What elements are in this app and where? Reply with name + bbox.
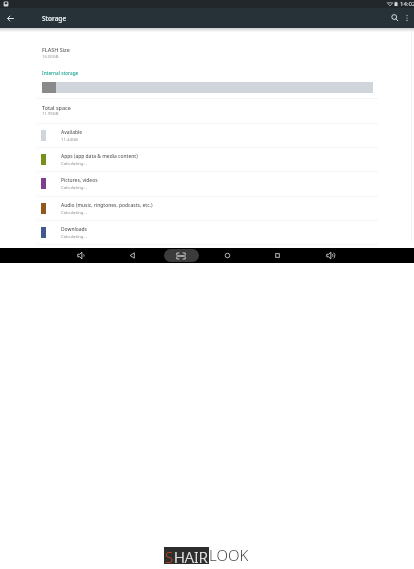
button[interactable]: Back	[0, 8, 20, 28]
staticText: Audio (music, ringtones, podcasts, etc.)	[61, 202, 153, 209]
button[interactable]: Volume up	[323, 248, 338, 263]
staticText: 16.00GB	[42, 54, 59, 60]
button[interactable]: Home	[220, 248, 235, 263]
button[interactable]: Pictures, videos	[0, 171, 414, 195]
staticText: Downloads	[61, 226, 87, 233]
staticText: Calculating...	[61, 233, 87, 239]
button[interactable]: Back	[125, 248, 140, 263]
staticText: Calculating...	[61, 184, 87, 190]
staticText: 11.99GB	[42, 111, 59, 117]
staticText: Pictures, videos	[61, 177, 98, 184]
button[interactable]: Volume down	[74, 248, 89, 263]
button[interactable]: Search	[386, 8, 404, 28]
staticText: Available	[61, 129, 83, 136]
staticText: FLASH Size	[42, 46, 70, 53]
button[interactable]: Downloads	[0, 220, 414, 244]
staticText: Calculating...	[61, 160, 87, 166]
button[interactable]: Available	[0, 123, 414, 147]
button[interactable]: Recents	[270, 248, 285, 263]
button[interactable]: Screenshot	[164, 249, 199, 262]
staticText: LOOK	[209, 545, 249, 565]
button[interactable]: More options	[400, 8, 414, 28]
staticText: HAIR	[174, 547, 208, 564]
staticText: Storage	[42, 14, 67, 23]
staticText: 11.44GB	[61, 136, 78, 142]
button[interactable]: Audio (music, ringtones, podcasts, etc.)	[0, 196, 414, 220]
staticText: S	[165, 547, 174, 564]
staticText: Calculating...	[61, 209, 87, 215]
staticText: 14:02	[400, 0, 414, 8]
button[interactable]: Apps (app data & media content)	[0, 147, 414, 171]
staticText: Internal storage	[42, 70, 79, 76]
staticText: Total space	[42, 104, 71, 111]
staticText: Apps (app data & media content)	[61, 153, 138, 160]
